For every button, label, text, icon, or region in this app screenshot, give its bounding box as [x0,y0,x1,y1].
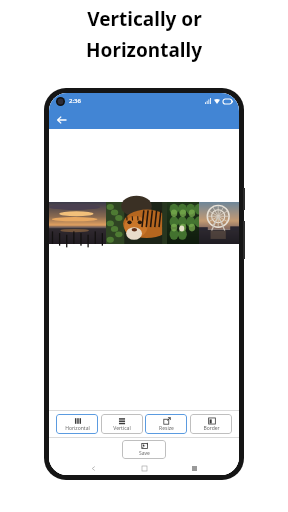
button[interactable]: Vertical [101,414,143,434]
staticText: 2:36 [69,97,81,105]
button[interactable]: Horizontal [56,414,98,434]
staticText: Border [203,425,220,432]
button[interactable]: Back [54,112,69,127]
button[interactable]: Back [87,462,100,475]
staticText: Vertically or [87,6,202,32]
staticText: Save [139,450,150,457]
button[interactable]: Border [190,414,232,434]
button[interactable]: Recents [188,462,201,475]
staticText: Horizontal [65,425,90,432]
staticText: Horizontally [86,37,202,63]
button[interactable]: Resize [145,414,187,434]
staticText: Resize [159,425,174,432]
button[interactable]: Save [122,440,166,459]
staticText: Vertical [113,425,131,432]
button[interactable]: Home [138,462,151,475]
